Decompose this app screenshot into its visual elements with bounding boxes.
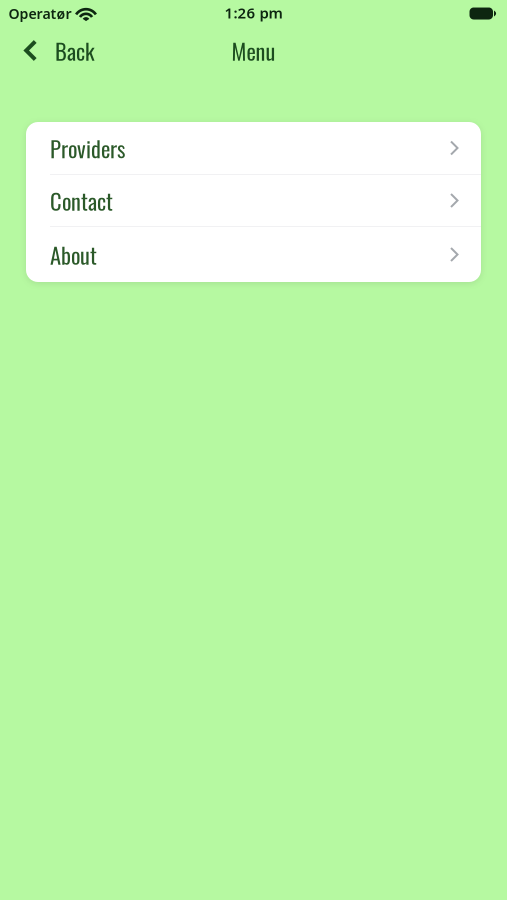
staticText: Contact [50, 184, 113, 217]
button[interactable]: About [26, 227, 481, 282]
staticText: 1:26 pm [224, 2, 282, 23]
staticText: Menu [231, 34, 275, 67]
button[interactable]: Providers [26, 122, 481, 174]
staticText: Operatør [8, 4, 71, 23]
staticText: Providers [50, 131, 125, 165]
staticText: Back [55, 34, 95, 67]
button[interactable]: Contact [26, 175, 481, 226]
staticText: About [50, 238, 97, 271]
button[interactable]: Back [0, 34, 95, 67]
